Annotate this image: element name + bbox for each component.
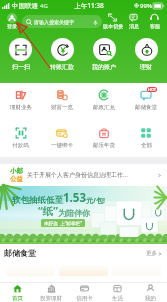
button[interactable]: 付款码 <box>0 127 41 149</box>
staticText: 邮政汇兑 <box>93 104 115 111</box>
button[interactable] <box>112 264 161 276</box>
staticText: 邮储食堂 <box>4 248 36 258</box>
staticText: 更多 <box>146 250 157 257</box>
staticText: 4G <box>40 2 48 10</box>
button[interactable]: 软包抽纸低至 <box>0 186 167 244</box>
button[interactable]: 投资理财 <box>34 283 68 302</box>
button[interactable]: 邮政汇兑 <box>83 89 125 111</box>
staticText: 信用卡 <box>76 295 93 302</box>
staticText: 理财业务 <box>10 104 32 111</box>
staticText: 一键绑卡 <box>51 142 73 149</box>
staticText: 上午11:38 <box>74 1 104 10</box>
staticText: 付款码 <box>12 142 29 149</box>
staticText: 登录 <box>7 23 17 29</box>
button[interactable] <box>6 264 55 276</box>
button[interactable]: 版本切换 <box>102 13 123 29</box>
button[interactable]: 转账汇款 <box>41 38 83 71</box>
button[interactable]: 信用卡 <box>68 283 101 302</box>
button[interactable]: 邮乐年货 <box>83 127 125 149</box>
button[interactable]: 理财业务 <box>0 89 41 111</box>
button[interactable]: 小邮 <box>0 164 167 186</box>
button[interactable]: 一键绑卡 <box>41 127 83 149</box>
staticText: 我的 <box>145 295 156 302</box>
button[interactable]: 请输入搜索关键字 <box>22 15 102 28</box>
button[interactable]: 客服 <box>144 13 165 29</box>
staticText: 元/包! <box>86 196 105 206</box>
staticText: 邮储食堂 <box>135 104 157 111</box>
staticText: 为陪伴你 <box>58 208 90 218</box>
staticText: 软包抽纸低至 <box>12 195 63 206</box>
staticText: 来好连 上“邮掌柜” <box>44 220 82 226</box>
button[interactable]: 消息 <box>123 13 144 29</box>
button[interactable]: 财富一览 <box>41 89 83 111</box>
button[interactable]: 扫一扫 <box>0 38 41 71</box>
staticText: 扫一扫 <box>12 63 30 71</box>
button[interactable]: 我的 <box>134 283 167 302</box>
staticText: “纸” <box>38 204 58 218</box>
staticText: 首页 <box>12 295 23 302</box>
staticText: 邮乐年货 <box>93 142 115 149</box>
button[interactable]: 我的账户 <box>83 38 125 71</box>
staticText: 投资理财 <box>40 295 62 302</box>
staticText: 全部 <box>141 142 152 149</box>
staticText: 公益 <box>10 175 23 183</box>
button[interactable]: 生活 <box>101 283 134 302</box>
button[interactable]: 更多 <box>146 250 162 257</box>
staticText: 我的账户 <box>92 63 116 71</box>
staticText: 版本切换 <box>103 23 123 29</box>
staticText: 消息 <box>129 23 139 29</box>
button[interactable] <box>59 264 108 276</box>
button[interactable]: 理财 <box>125 38 167 71</box>
staticText: 财富一览 <box>51 104 73 111</box>
button[interactable]: HOT <box>125 89 167 111</box>
staticText: 关于开展个人客户身份信息治理工作... <box>27 171 157 179</box>
staticText: 理财 <box>140 63 152 71</box>
staticText: 1.53 <box>63 190 86 206</box>
button[interactable]: 全部 <box>125 127 167 149</box>
button[interactable]: 首页 <box>0 283 34 302</box>
staticText: 中国联通 <box>12 2 38 10</box>
staticText: 生活 <box>112 295 123 302</box>
staticText: 99% <box>140 2 152 10</box>
staticText: 转账汇款 <box>50 63 74 71</box>
staticText: 小邮 <box>10 167 23 175</box>
staticText: 客服 <box>150 23 160 29</box>
staticText: HOT <box>148 87 156 92</box>
staticText: 请输入搜索关键字 <box>34 19 74 25</box>
button[interactable]: 登录 <box>4 13 19 29</box>
